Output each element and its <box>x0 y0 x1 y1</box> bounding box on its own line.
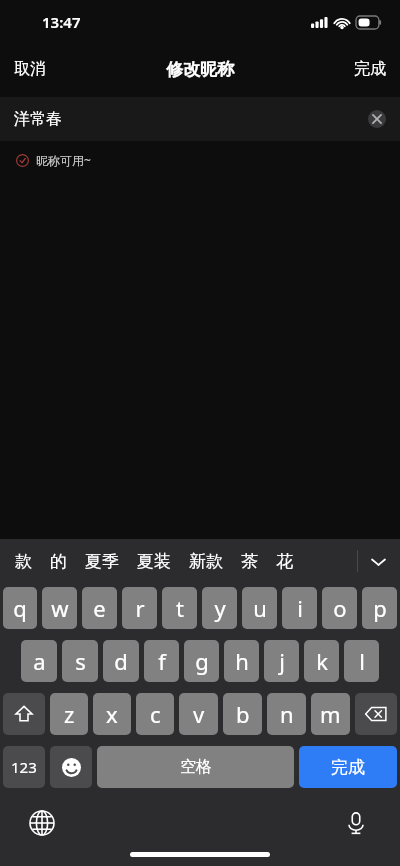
button[interactable]: t <box>162 587 197 629</box>
button[interactable]: d <box>103 640 139 682</box>
button[interactable]: x <box>93 693 131 735</box>
button[interactable]: j <box>264 640 299 682</box>
button[interactable]: Change keyboard language <box>24 805 60 841</box>
staticText: 完成 <box>354 59 386 79</box>
button[interactable]: Emoji <box>50 746 92 788</box>
staticText: n <box>280 699 294 729</box>
staticText: 空格 <box>180 757 212 777</box>
staticText: 夏季 <box>85 551 119 572</box>
staticText: 取消 <box>14 59 46 79</box>
button[interactable]: q <box>3 587 37 629</box>
button[interactable]: 123 <box>3 746 45 788</box>
staticText: m <box>320 699 341 729</box>
staticText: q <box>13 593 27 623</box>
button[interactable]: h <box>224 640 259 682</box>
button[interactable]: u <box>242 587 277 629</box>
button[interactable]: 空格 <box>97 746 294 788</box>
staticText: 修改昵称 <box>166 59 234 80</box>
staticText: j <box>279 646 285 676</box>
button[interactable]: Backspace <box>355 693 397 735</box>
button[interactable]: i <box>282 587 317 629</box>
staticText: 昵称可用~ <box>36 152 91 168</box>
button[interactable]: Clear text <box>366 108 388 130</box>
button[interactable]: c <box>136 693 174 735</box>
button[interactable]: p <box>362 587 397 629</box>
button[interactable]: 花 <box>267 545 302 578</box>
button[interactable]: a <box>21 640 57 682</box>
button[interactable]: 完成 <box>299 746 397 788</box>
staticText: 夏装 <box>137 551 171 572</box>
staticText: w <box>51 593 69 623</box>
staticText: f <box>158 646 166 676</box>
button[interactable]: 的 <box>41 545 76 578</box>
button[interactable]: e <box>82 587 117 629</box>
button[interactable]: z <box>50 693 88 735</box>
button[interactable]: s <box>62 640 98 682</box>
staticText: 的 <box>50 551 67 572</box>
button[interactable]: 完成 <box>340 51 400 87</box>
staticText: a <box>33 646 46 676</box>
button[interactable]: 取消 <box>0 51 60 87</box>
staticText: 款 <box>15 551 32 572</box>
staticText: d <box>114 646 128 676</box>
staticText: s <box>75 646 86 676</box>
button[interactable]: n <box>267 693 306 735</box>
staticText: l <box>359 646 365 676</box>
staticText: x <box>106 699 118 729</box>
button[interactable]: y <box>202 587 237 629</box>
staticText: h <box>235 646 249 676</box>
staticText: g <box>195 646 209 676</box>
button[interactable]: k <box>304 640 339 682</box>
button[interactable]: b <box>223 693 262 735</box>
button[interactable]: 洋常春 <box>0 97 400 141</box>
staticText: 新款 <box>189 551 223 572</box>
staticText: o <box>333 593 347 623</box>
staticText: v <box>193 699 205 729</box>
staticText: 123 <box>11 757 37 777</box>
staticText: b <box>236 699 250 729</box>
staticText: y <box>214 593 226 623</box>
staticText: 茶 <box>241 551 258 572</box>
button[interactable]: w <box>42 587 77 629</box>
staticText: t <box>176 593 184 623</box>
button[interactable]: m <box>311 693 350 735</box>
staticText: i <box>297 593 303 623</box>
staticText: e <box>93 593 106 623</box>
staticText: 13:47 <box>42 12 81 32</box>
staticText: 花 <box>276 551 293 572</box>
staticText: c <box>150 699 161 729</box>
staticText: k <box>316 646 328 676</box>
staticText: u <box>253 593 267 623</box>
button[interactable]: 夏装 <box>128 545 180 578</box>
button[interactable]: Voice input <box>338 805 374 841</box>
staticText: p <box>373 593 387 623</box>
button[interactable]: l <box>344 640 379 682</box>
button[interactable]: o <box>322 587 357 629</box>
button[interactable]: v <box>179 693 218 735</box>
button[interactable]: g <box>184 640 219 682</box>
button[interactable]: 款 <box>6 545 41 578</box>
button[interactable]: Hide keyboard <box>356 539 400 583</box>
staticText: z <box>64 699 75 729</box>
staticText: r <box>135 593 145 623</box>
button[interactable]: r <box>122 587 157 629</box>
button[interactable]: Shift <box>3 693 45 735</box>
staticText: 完成 <box>331 757 365 778</box>
staticText: 洋常春 <box>14 109 366 129</box>
button[interactable]: 夏季 <box>76 545 128 578</box>
button[interactable]: 茶 <box>232 545 267 578</box>
button[interactable]: 新款 <box>180 545 232 578</box>
button[interactable]: f <box>144 640 179 682</box>
